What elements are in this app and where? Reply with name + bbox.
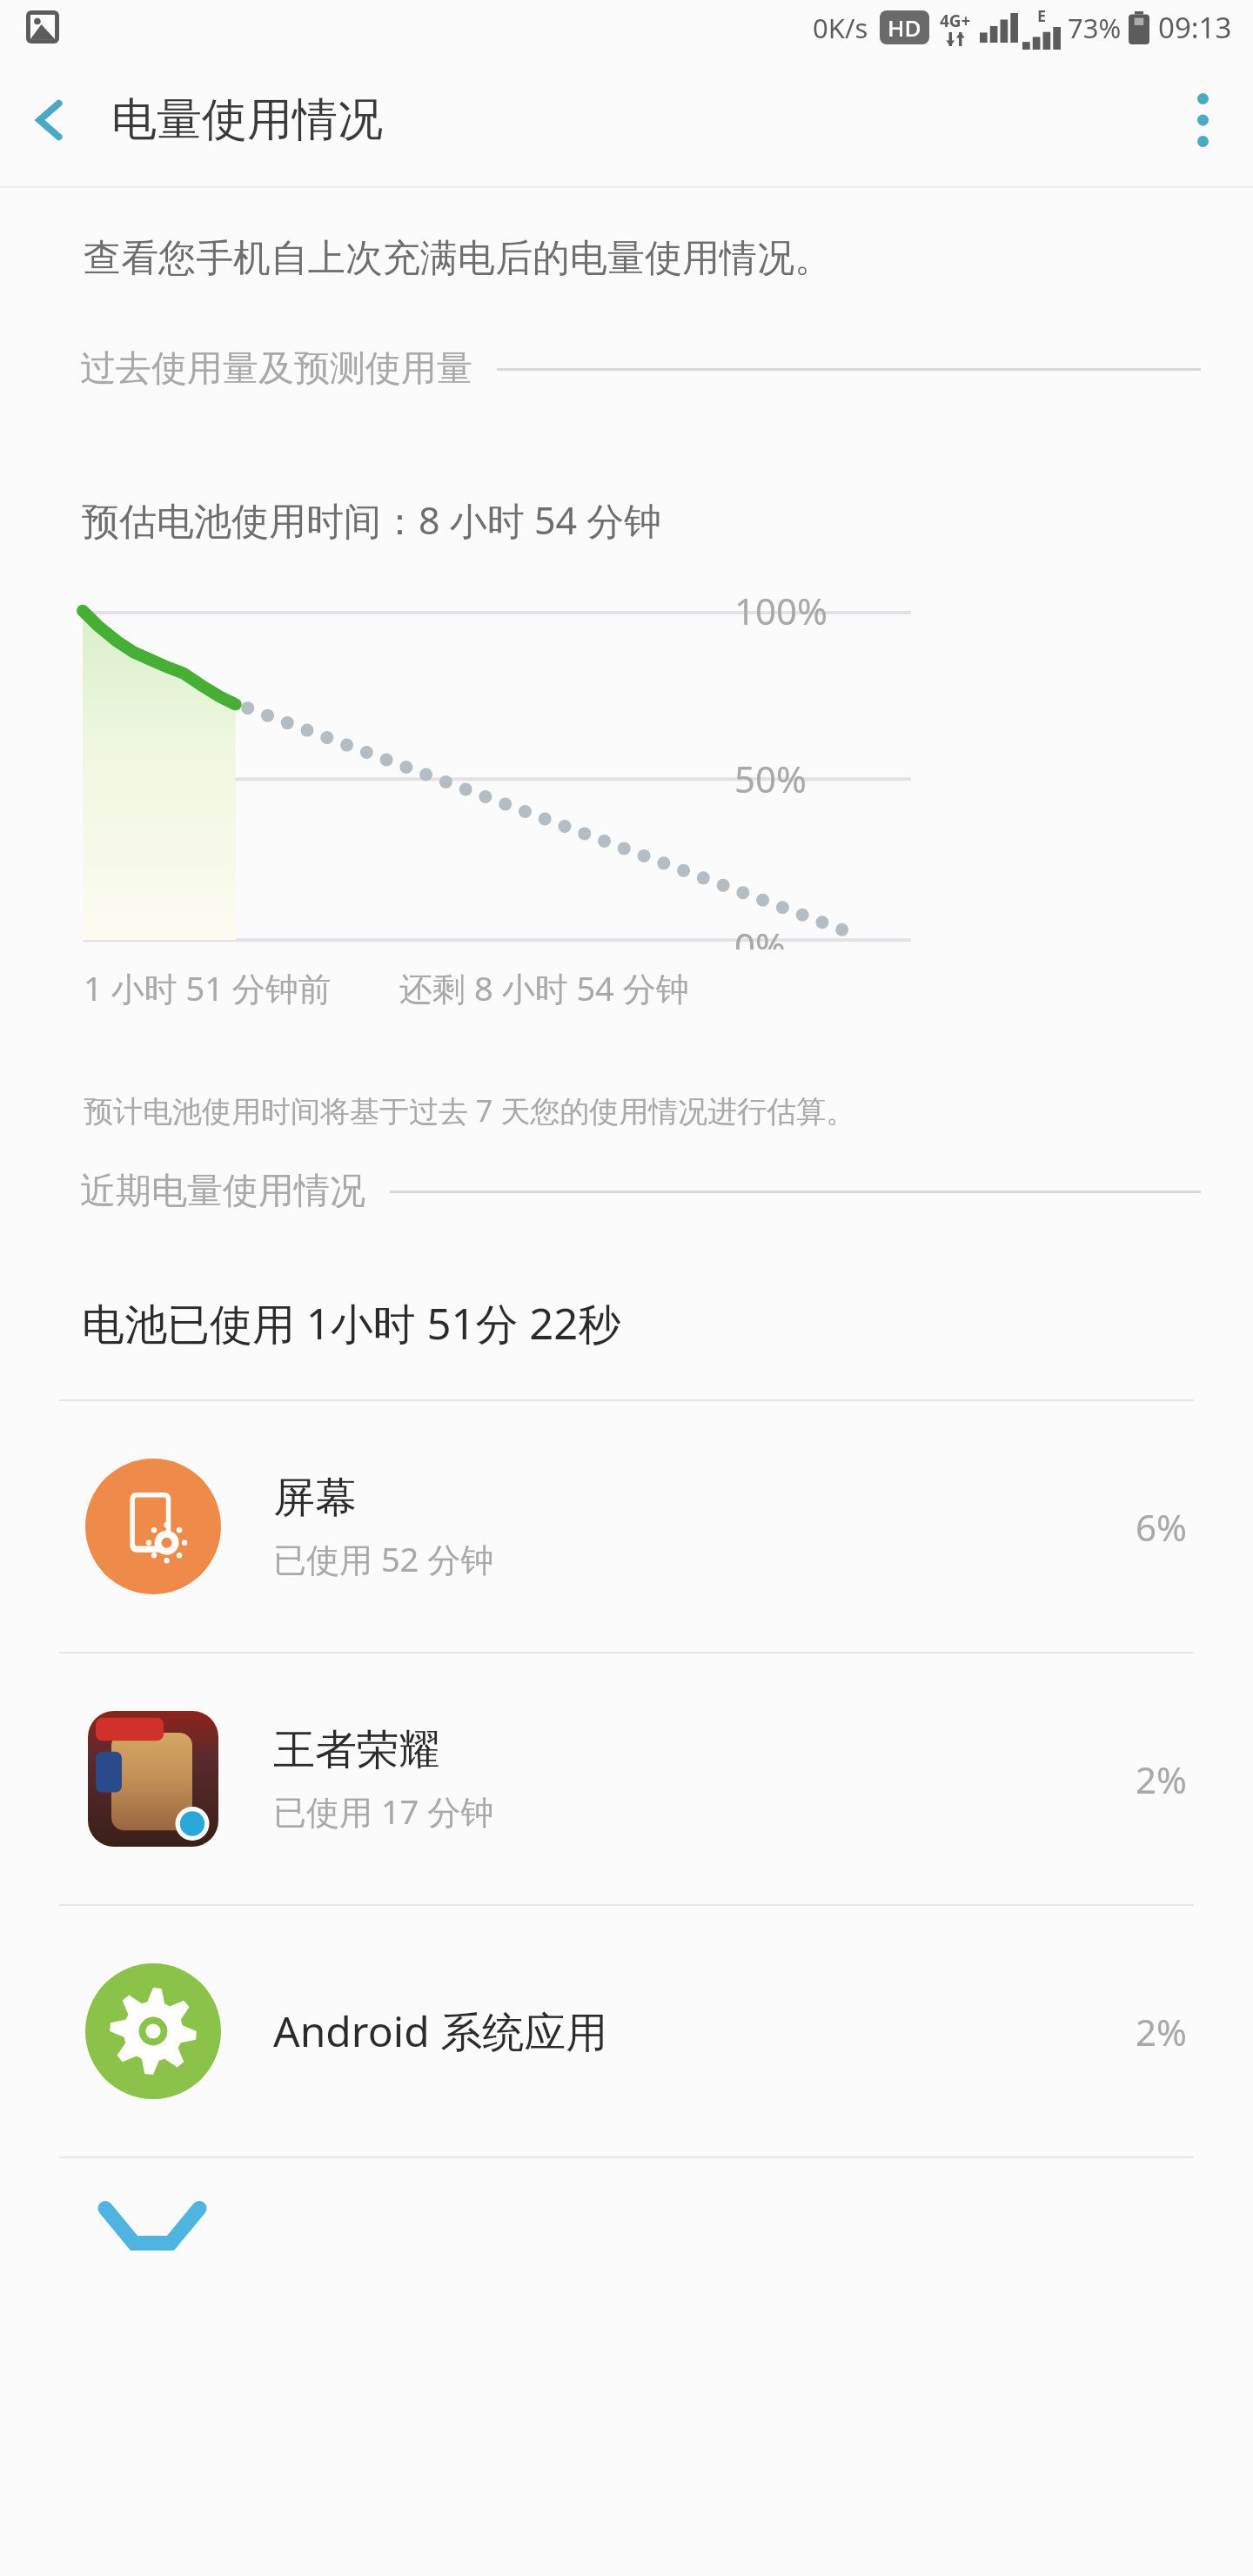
button[interactable]: Back: [0, 54, 101, 186]
staticText: 0%: [734, 921, 786, 949]
staticText: 0K/s: [813, 10, 868, 46]
staticText: 过去使用量及预测使用量: [80, 346, 472, 392]
staticText: HD: [888, 12, 921, 43]
staticText: 100%: [734, 586, 828, 635]
staticText: 还剩 8 小时 54 分钟: [399, 965, 689, 1010]
staticText: 王者荣耀: [273, 1724, 440, 1776]
staticText: 屏幕: [273, 1472, 357, 1524]
staticText: 4G+: [940, 10, 971, 32]
staticText: 近期电量使用情况: [80, 1169, 365, 1214]
staticText: 73%: [1068, 10, 1122, 46]
button[interactable]: 王者荣耀: [0, 1654, 1253, 1904]
staticText: 查看您手机自上次充满电后的电量使用情况。: [84, 235, 832, 282]
staticText: 2%: [1136, 2007, 1187, 2056]
button[interactable]: More options: [1152, 54, 1253, 186]
staticText: 50%: [734, 754, 807, 803]
staticText: 预计电池使用时间将基于过去 7 天您的使用情况进行估算。: [84, 1090, 856, 1130]
staticText: E: [1037, 5, 1047, 27]
staticText: Android 系统应用: [273, 2002, 608, 2060]
staticText: 09:13: [1158, 8, 1232, 47]
button[interactable]: Android 系统应用: [0, 1906, 1253, 2157]
staticText: 电量使用情况: [111, 91, 383, 149]
staticText: 已使用 17 分钟: [273, 1788, 494, 1834]
staticText: 已使用 52 分钟: [273, 1536, 494, 1581]
staticText: 6%: [1136, 1502, 1187, 1552]
staticText: 预估电池使用时间：8 小时 54 分钟: [82, 494, 662, 546]
button[interactable]: 屏幕: [0, 1401, 1253, 1652]
staticText: 电池已使用 1小时 51分 22秒: [82, 1294, 621, 1352]
staticText: 2%: [1136, 1754, 1187, 1804]
staticText: 1 小时 51 分钟前: [84, 965, 332, 1010]
